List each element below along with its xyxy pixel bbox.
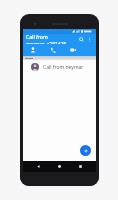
button[interactable]: Calls xyxy=(47,44,59,56)
button[interactable]: Recents xyxy=(75,161,86,172)
button[interactable]: Home xyxy=(54,161,65,172)
button[interactable]: Search xyxy=(77,35,86,44)
button[interactable]: Call from neymar xyxy=(23,60,96,74)
button[interactable]: Back xyxy=(33,161,44,172)
button[interactable]: Contacts xyxy=(27,44,39,56)
staticText: Call from neymar xyxy=(43,64,84,71)
staticText: Call from neymar_a281425 xyxy=(26,34,77,44)
button[interactable]: New call xyxy=(80,145,91,156)
button[interactable]: More options xyxy=(86,36,93,43)
button[interactable]: Video call xyxy=(67,44,79,56)
